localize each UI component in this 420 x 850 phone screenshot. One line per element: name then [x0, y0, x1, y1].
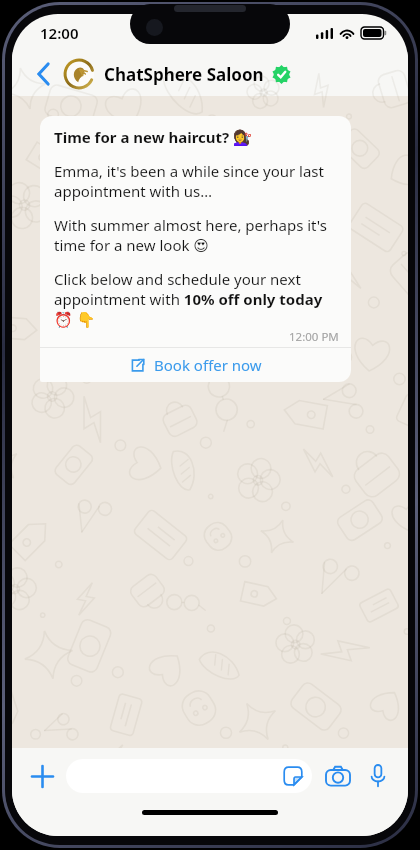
button[interactable]: Book offer now — [40, 348, 351, 382]
button[interactable]: Stickers — [281, 764, 305, 788]
button[interactable]: Camera — [320, 758, 356, 794]
staticText: 12:00 PM — [289, 329, 339, 345]
staticText: Click below and schedule your next appoi… — [54, 269, 339, 329]
staticText: With summer almost here, perhaps it's ti… — [54, 215, 339, 255]
button[interactable]: Back — [26, 57, 60, 91]
staticText: Book offer now — [154, 355, 262, 375]
button[interactable]: Attach — [24, 758, 60, 794]
button[interactable]: Voice message — [360, 758, 396, 794]
staticText: ChatSphere Saloon — [104, 63, 264, 86]
staticText: 12:00 — [40, 23, 79, 43]
button[interactable]: Stickers — [66, 759, 312, 793]
staticText: Emma, it's been a while since your last … — [54, 161, 339, 201]
staticText: Time for a new haircut? 💇‍♀️ — [54, 127, 252, 147]
